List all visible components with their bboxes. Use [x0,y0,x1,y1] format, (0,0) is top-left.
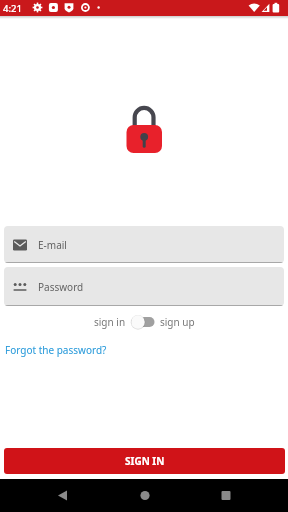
staticText: E-mail [38,238,67,252]
staticText: sign in [94,315,126,329]
button[interactable]: E-mail [4,226,284,263]
button[interactable]: SIGN IN [4,448,285,474]
button[interactable] [211,480,241,510]
button[interactable]: Password [4,267,284,306]
staticText: 4:21 [3,2,22,15]
button[interactable] [130,480,160,510]
staticText: Password [38,280,84,294]
button[interactable]: Forgot the password? [5,343,107,357]
button[interactable]: sign in [0,313,288,331]
staticText: SIGN IN [125,454,165,468]
staticText: sign up [160,315,195,329]
button[interactable] [48,480,78,510]
